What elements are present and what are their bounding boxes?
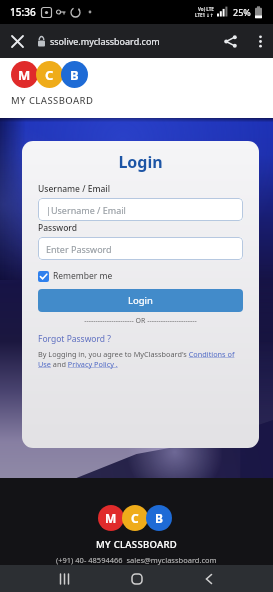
staticText: M <box>18 66 31 84</box>
staticText: Enter Password <box>46 243 112 255</box>
staticText: (+91) 40- 48594466 sales@myclassboard.co… <box>56 555 217 565</box>
staticText: B <box>70 66 79 84</box>
staticText: 25% <box>233 6 251 18</box>
staticText: ssolive.myclassboard.com <box>50 35 160 47</box>
staticText: Login <box>128 294 153 307</box>
staticText: Password <box>38 222 78 234</box>
staticText: Forgot Password ? <box>38 333 111 345</box>
staticText: C <box>45 66 54 84</box>
staticText: Remember me <box>53 270 113 282</box>
button[interactable] <box>117 565 157 592</box>
button[interactable] <box>189 565 229 592</box>
staticText: ---------------------- OR --------------… <box>38 316 243 326</box>
staticText: Vo) LTE <box>198 6 214 12</box>
staticText: Username / Email <box>38 183 110 195</box>
staticText: 15:36 <box>10 5 36 19</box>
staticText: MY CLASSBOARD <box>96 538 178 551</box>
staticText: |Username / Email <box>46 204 126 216</box>
button[interactable]: |Username / Email <box>38 198 243 221</box>
button[interactable]: ssolive.myclassboard.com <box>34 35 213 47</box>
button[interactable]: Remember me <box>38 270 113 282</box>
staticText: Login <box>38 151 243 173</box>
button[interactable]: Forgot Password ? <box>38 333 111 345</box>
button[interactable] <box>213 24 247 58</box>
button[interactable] <box>247 28 273 54</box>
staticText: M <box>105 510 117 526</box>
button[interactable] <box>45 565 85 592</box>
button[interactable]: By Logging in, you agree to MyClassboard… <box>38 349 235 369</box>
staticText: C <box>131 510 139 526</box>
staticText: B <box>155 510 163 526</box>
staticText: MY CLASSBOARD <box>11 94 94 107</box>
button[interactable]: Enter Password <box>38 237 243 260</box>
button[interactable] <box>0 24 34 58</box>
staticText: LTE1 ↓↑ <box>195 12 214 18</box>
button[interactable]: Login <box>38 289 243 312</box>
